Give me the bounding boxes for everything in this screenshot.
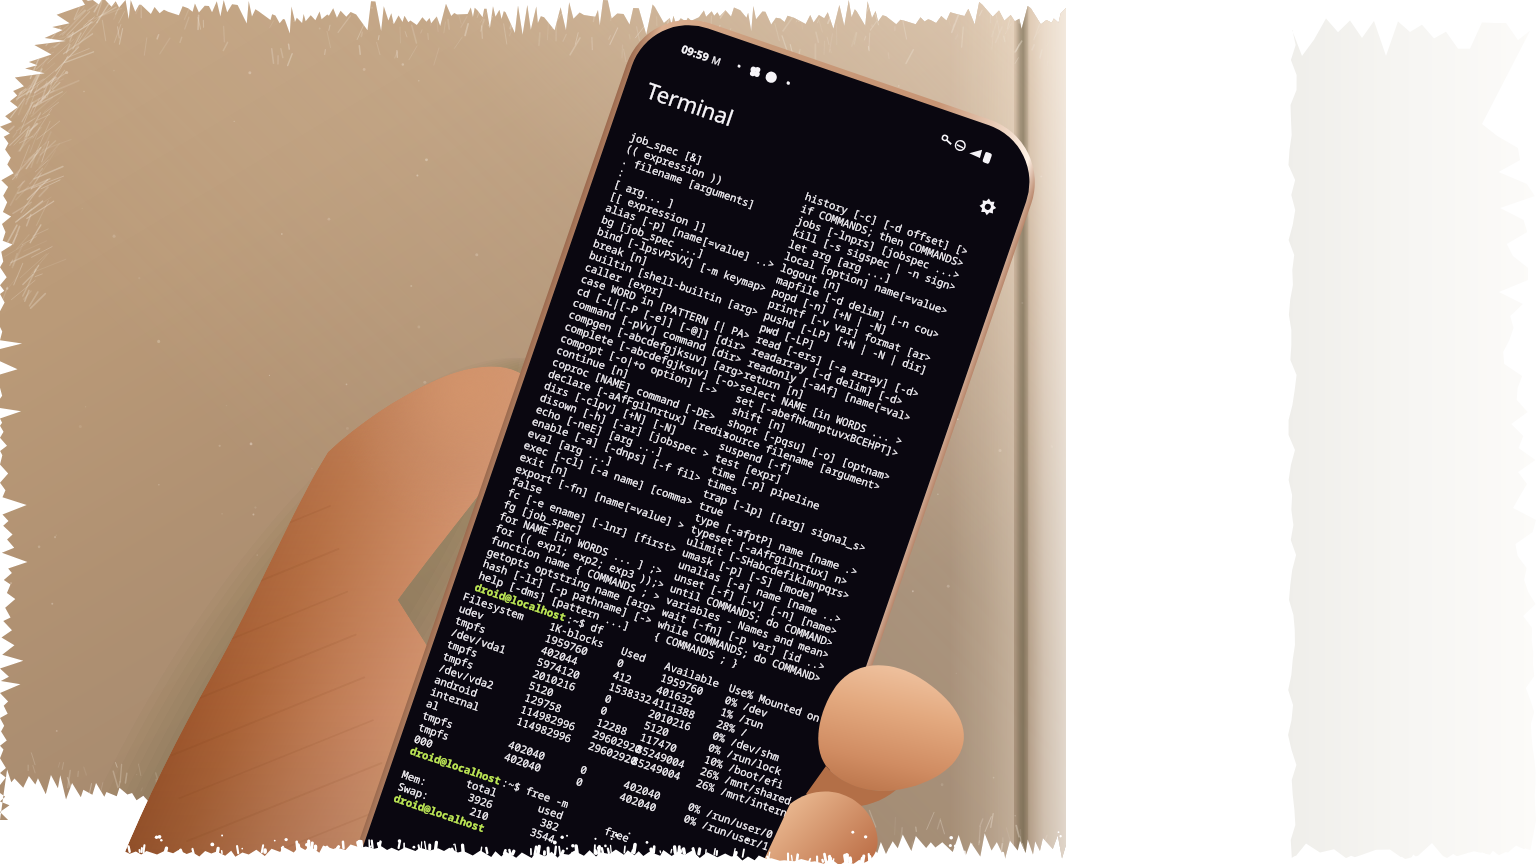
button[interactable]: Terminal app running on a phone [0,0,1536,864]
